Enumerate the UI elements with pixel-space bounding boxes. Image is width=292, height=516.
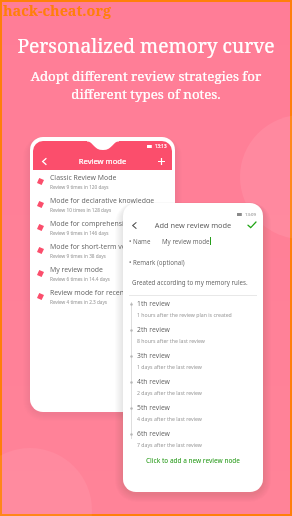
staticText: 1 days after the last review <box>137 363 202 370</box>
staticText: Review 10 times in 128 days <box>50 207 112 213</box>
staticText: Review mode for recent exa <box>50 288 140 297</box>
staticText: 4 days after the last review <box>137 415 202 422</box>
staticText: My review mode <box>162 237 210 245</box>
staticText: hack-cheat.org <box>3 1 111 21</box>
staticText: Review 9 times in 120 days <box>50 184 109 190</box>
button[interactable]: Add <box>154 154 168 168</box>
staticText: 2 days after the last review <box>137 389 202 396</box>
staticText: 6th review <box>137 429 170 438</box>
staticText: 2th review <box>137 325 170 334</box>
staticText: Greated according to my memory rules. <box>132 278 248 286</box>
staticText: Classic Review Mode <box>50 173 117 182</box>
staticText: Review 6 times in 14.4 days <box>50 276 110 282</box>
staticText: 13:13 <box>155 143 167 149</box>
staticText: Review mode <box>51 156 154 166</box>
button[interactable]: Mode for short-term vocabu <box>33 239 172 262</box>
staticText: My review mode <box>50 265 103 274</box>
staticText: Review 4 times in 2.3 days <box>50 299 108 305</box>
staticText: 1th review <box>137 299 170 308</box>
staticText: 13:09 <box>245 211 256 217</box>
button[interactable]: Confirm <box>245 218 259 232</box>
staticText: Adopt different review strategies for di… <box>2 67 290 103</box>
button[interactable]: Review mode for recent exa <box>33 285 172 308</box>
staticText: 4th review <box>137 377 170 386</box>
button[interactable]: Mode for declarative knowledge <box>33 193 172 216</box>
button[interactable]: Mode for comprehension kn <box>33 216 172 239</box>
staticText: Add new review mode <box>141 220 245 230</box>
staticText: 1 hours after the review plan is created <box>137 311 232 318</box>
button[interactable]: Classic Review Mode <box>33 170 172 193</box>
staticText: Mode for short-term vocabu <box>50 242 142 251</box>
button[interactable]: Click to add a new review node <box>123 456 263 465</box>
staticText: Review 9 times in 146 days <box>50 230 109 236</box>
staticText: • Name <box>129 237 151 245</box>
staticText: Review 9 times in 38 days <box>50 253 106 259</box>
staticText: Mode for declarative knowledge <box>50 196 155 205</box>
staticText: • Remark (optional) <box>129 258 185 266</box>
staticText: 7 days after the last review <box>137 441 202 448</box>
button[interactable]: Back <box>37 154 51 168</box>
staticText: 5th review <box>137 403 170 412</box>
staticText: 8 hours after the last review <box>137 337 205 344</box>
button[interactable]: My review mode <box>33 262 172 285</box>
staticText: 3th review <box>137 351 170 360</box>
button[interactable]: Back <box>127 218 141 232</box>
staticText: Mode for comprehension kn <box>50 219 142 228</box>
staticText: Personalized memory curve <box>2 32 290 58</box>
